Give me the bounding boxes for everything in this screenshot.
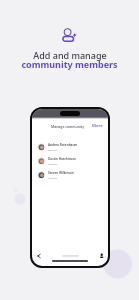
button[interactable]: Andrea Rotenbaum bbox=[32, 140, 108, 154]
staticText: Add and manage bbox=[33, 49, 107, 61]
button[interactable]: Steven Wilkinson bbox=[32, 168, 108, 182]
button[interactable]: Dustin Hutchinson bbox=[32, 154, 108, 168]
staticText: Member bbox=[48, 148, 58, 151]
staticText: Andrea Rotenbaum bbox=[48, 143, 78, 147]
staticText: Member bbox=[48, 176, 58, 179]
staticText: Manage community bbox=[51, 124, 85, 129]
button[interactable]: Profile bbox=[99, 253, 105, 259]
staticText: Member bbox=[48, 162, 58, 165]
staticText: Dustin Hutchinson bbox=[48, 157, 77, 161]
button[interactable]: More bbox=[92, 123, 103, 129]
staticText: More bbox=[92, 123, 103, 129]
staticText: community members bbox=[21, 58, 118, 70]
staticText: Steven Wilkinson bbox=[48, 171, 74, 175]
button[interactable]: Back bbox=[36, 253, 42, 259]
